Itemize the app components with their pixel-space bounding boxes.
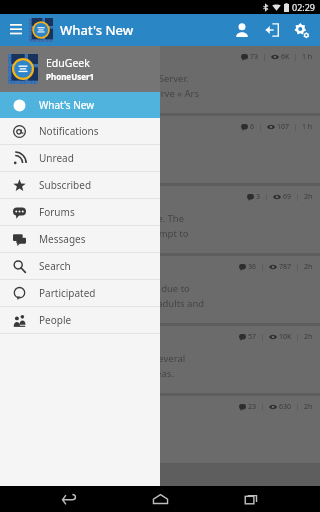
staticText: 57 bbox=[248, 332, 257, 342]
staticText: ...s going to love watching me attempt t… bbox=[6, 227, 189, 240]
staticText: ...to be able to communicate with adults… bbox=[6, 297, 205, 310]
button[interactable]: People bbox=[0, 307, 160, 333]
button[interactable]: 36 bbox=[0, 256, 320, 323]
button[interactable]: Notifications bbox=[0, 118, 160, 144]
staticText: 1 h bbox=[302, 122, 313, 132]
staticText: 6 bbox=[250, 122, 255, 132]
staticText: What's New bbox=[39, 98, 95, 112]
staticText: Participated bbox=[39, 286, 96, 300]
button[interactable]: 6 bbox=[0, 116, 320, 183]
staticText: 10K bbox=[279, 332, 292, 342]
button[interactable]: Account bbox=[227, 15, 257, 45]
staticText: | bbox=[257, 262, 269, 272]
button[interactable]: 73 bbox=[0, 46, 320, 113]
staticText: 107 bbox=[277, 122, 290, 132]
staticText: 630 bbox=[279, 402, 292, 412]
staticText: | bbox=[255, 122, 267, 132]
staticText: 2h bbox=[304, 332, 313, 342]
button[interactable]: Back bbox=[47, 486, 91, 512]
button[interactable]: 57 bbox=[0, 326, 320, 393]
staticText: Notifications bbox=[39, 124, 99, 138]
staticText: | bbox=[290, 122, 302, 132]
staticText: | bbox=[257, 332, 269, 342]
button[interactable]: Subscribed bbox=[0, 172, 160, 198]
button[interactable]: Participated bbox=[0, 280, 160, 306]
button[interactable]: Home bbox=[138, 486, 182, 512]
button[interactable]: 23 bbox=[0, 396, 320, 463]
staticText: | bbox=[257, 402, 269, 412]
staticText: 02:29 bbox=[292, 1, 316, 13]
staticText: 36 bbox=[248, 262, 257, 272]
button[interactable]: Unread bbox=[0, 145, 160, 171]
staticText: 69 bbox=[283, 192, 292, 202]
staticText: PhoneUser1 bbox=[46, 71, 95, 82]
staticText: 23 bbox=[248, 402, 257, 412]
staticText: 2h bbox=[304, 262, 313, 272]
staticText: 3 bbox=[256, 192, 261, 202]
button[interactable]: Sign out bbox=[257, 15, 287, 45]
button[interactable]: Settings bbox=[287, 16, 315, 44]
staticText: ...the Mac Pro called the xMac Pro Serve… bbox=[6, 72, 189, 85]
staticText: 2h bbox=[304, 402, 313, 412]
button[interactable]: Forums bbox=[0, 199, 160, 225]
button[interactable]: What's New bbox=[0, 92, 160, 118]
staticText: | bbox=[292, 262, 304, 272]
staticText: ...guarding issue at a Leeds school due … bbox=[6, 282, 190, 295]
staticText: What's New bbox=[60, 21, 134, 39]
staticText: 2h bbox=[304, 192, 313, 202]
button[interactable]: Messages bbox=[0, 226, 160, 252]
staticText: | bbox=[290, 52, 302, 62]
staticText: Unread bbox=[39, 151, 74, 165]
staticText: ...leted a child safeguarding post sever… bbox=[6, 352, 186, 365]
staticText: | bbox=[259, 52, 271, 62]
staticText: Forums bbox=[39, 205, 75, 219]
staticText: ...is kind of forum is for sharing ideas… bbox=[6, 367, 174, 380]
button[interactable]: Open navigation drawer bbox=[5, 19, 27, 41]
button[interactable]: Search bbox=[0, 253, 160, 279]
staticText: 1 h bbox=[302, 52, 313, 62]
staticText: | bbox=[292, 402, 304, 412]
staticText: People bbox=[39, 313, 72, 327]
staticText: | bbox=[292, 332, 304, 342]
staticText: | bbox=[292, 192, 304, 202]
staticText: 787 bbox=[279, 262, 292, 272]
staticText: Subscribed bbox=[39, 178, 92, 192]
staticText: Search bbox=[39, 259, 71, 273]
staticText: Messages bbox=[39, 232, 86, 246]
staticText: EduGeek bbox=[46, 56, 90, 70]
staticText: ...and handle the case you describe. The bbox=[6, 212, 185, 225]
staticText: | bbox=[261, 192, 273, 202]
button[interactable]: Recent apps bbox=[229, 486, 273, 512]
staticText: 6K bbox=[281, 52, 290, 62]
button[interactable]: EduGeek bbox=[0, 46, 160, 92]
button[interactable]: 3 bbox=[0, 186, 320, 253]
staticText: ...3 Mac Pro into a modern-day Xserve « … bbox=[6, 87, 200, 100]
staticText: 73 bbox=[250, 52, 259, 62]
